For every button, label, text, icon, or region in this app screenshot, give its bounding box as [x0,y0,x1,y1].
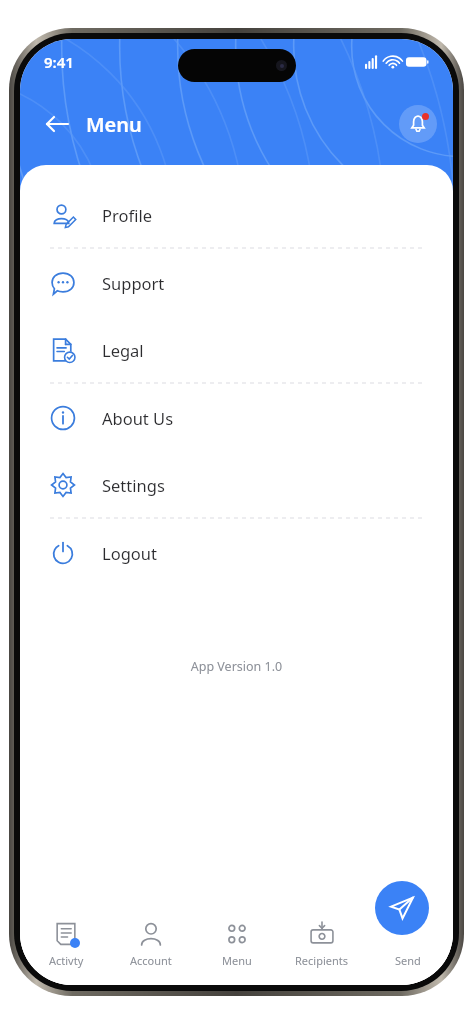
button[interactable]: Settings [20,451,453,518]
staticText: Profile [102,204,152,226]
button[interactable]: Send [368,913,448,968]
button[interactable]: Legal [20,316,453,383]
staticText: Send [395,953,421,968]
button[interactable]: Send [375,881,429,935]
button[interactable]: Back [38,105,76,143]
staticText: Account [130,953,172,968]
staticText: Logout [102,542,157,564]
staticText: About Us [102,407,174,429]
staticText: App Version 1.0 [20,658,453,675]
button[interactable]: Profile [20,181,453,248]
button[interactable]: Notifications [399,105,437,143]
button[interactable]: Logout [20,519,453,586]
staticText: 9:41 [44,52,74,72]
button[interactable]: About Us [20,384,453,451]
button[interactable]: Menu [197,913,277,968]
staticText: Menu [222,953,252,968]
staticText: Support [102,272,165,294]
staticText: Recipients [295,953,349,968]
button[interactable]: Support [20,249,453,316]
button[interactable]: Activty [26,913,106,968]
button[interactable]: Account [111,913,191,968]
staticText: Menu [86,111,142,138]
staticText: Settings [102,474,165,496]
staticText: Activty [49,953,84,968]
staticText: Legal [102,339,144,361]
button[interactable]: Recipients [282,913,362,968]
